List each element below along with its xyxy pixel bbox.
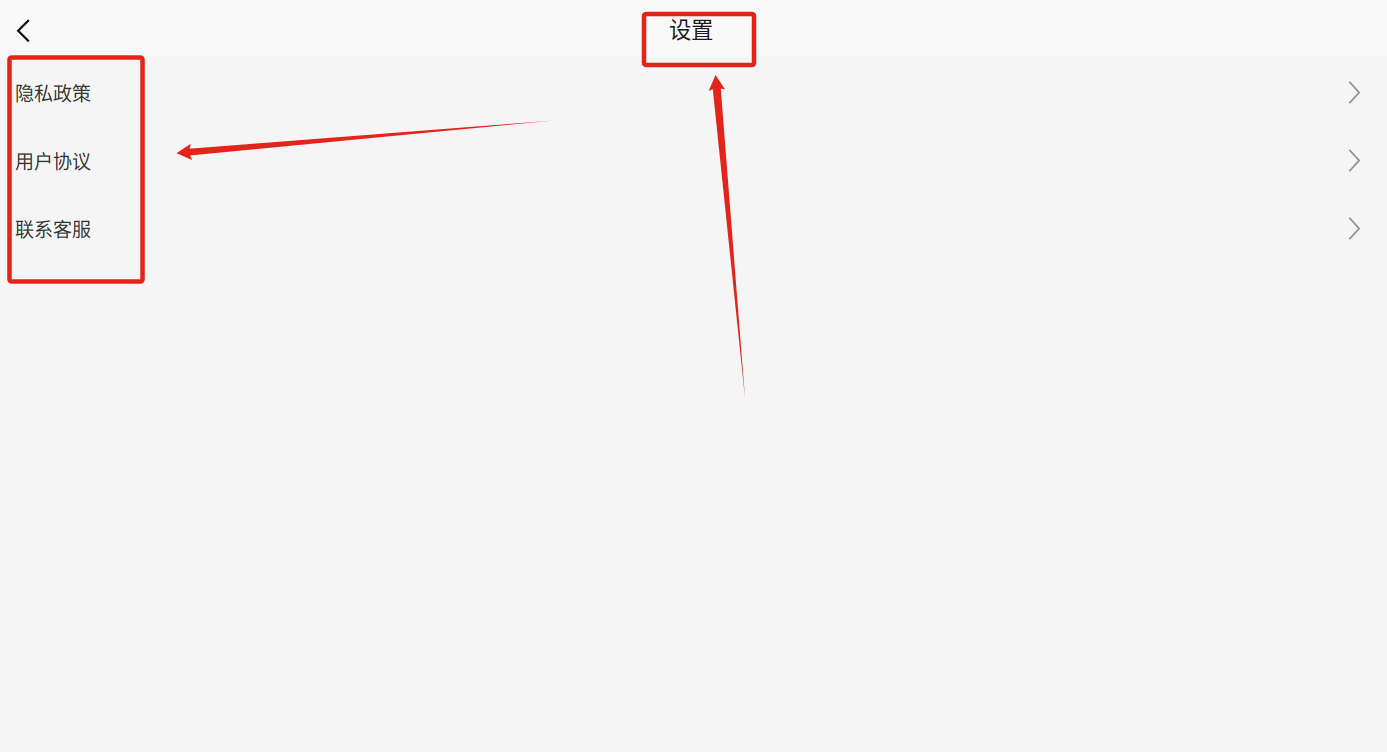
button[interactable]: 隐私政策: [0, 58, 1387, 126]
staticText: 设置: [669, 12, 713, 44]
staticText: 用户协议: [15, 147, 91, 174]
staticText: 联系客服: [15, 215, 91, 242]
button[interactable]: 联系客服: [0, 194, 1387, 262]
button[interactable]: 用户协议: [0, 126, 1387, 194]
staticText: 隐私政策: [15, 79, 91, 106]
button[interactable]: Back: [0, 0, 120, 58]
